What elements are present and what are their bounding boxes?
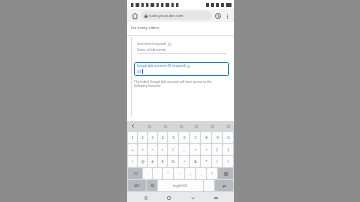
staticText: , [201,171,202,176]
button[interactable]: 8 [201,132,211,143]
button[interactable]: 3 [148,132,157,143]
staticText: ] [227,147,229,152]
staticText: ( [216,159,218,164]
button[interactable]: 0 [223,132,233,143]
staticText: 2 [141,135,144,140]
button[interactable]: 1 [128,132,137,143]
button[interactable]: 9 [212,132,222,143]
button[interactable]: Expand toolbar [129,122,137,130]
button[interactable]: Space [158,180,203,191]
button[interactable]: + [128,144,137,155]
button[interactable]: _ [179,144,189,155]
button[interactable]: Hide keyboard [188,193,197,202]
staticText: ? [211,171,213,176]
staticText: 1/2 [133,172,138,176]
button[interactable]: tudo.youtube.com [141,11,212,20]
staticText: $ [161,159,164,164]
staticText: . [209,183,210,188]
button[interactable]: Home [164,193,173,202]
button[interactable]: Home [130,11,140,21]
button[interactable]: % [168,156,178,167]
button[interactable]: = [158,144,167,155]
button[interactable]: < [190,144,200,155]
button[interactable]: 7 [190,132,200,143]
button[interactable]: / [168,144,178,155]
staticText: English(US) [173,184,188,188]
button[interactable]: Keyboard tool 3 [177,122,185,130]
button[interactable]: ) [223,156,233,167]
staticText: * [205,159,208,164]
staticText: = [161,147,164,152]
button[interactable]: Emoji [147,180,157,191]
button[interactable]: 5 [168,132,178,143]
staticText: " [167,171,169,176]
button[interactable]: More options [223,12,231,20]
staticText: & [194,159,197,164]
button[interactable]: $ [158,156,167,167]
staticText: following features: [134,84,229,88]
button[interactable]: > [201,144,211,155]
staticText: ^ [183,159,186,164]
button[interactable]: Enter [215,180,233,191]
button[interactable]: 1/2 [128,168,142,179]
button[interactable]: Recent apps [141,193,150,202]
staticText: tudo.youtube.com [149,13,184,18]
button[interactable]: 4 [158,132,167,143]
button[interactable]: Back [211,193,220,202]
button[interactable]: # [148,156,157,167]
button[interactable]: ! [128,156,137,167]
button[interactable]: ; [185,168,195,179]
staticText: Enter a link name [137,47,166,52]
staticText: Link name (required) [137,42,167,46]
button[interactable]: 6 [179,132,189,143]
button[interactable]: Keyboard tool 2 [161,122,169,130]
staticText: ! [132,159,133,164]
button[interactable]: History [213,11,223,21]
button[interactable]: ' [153,168,162,179]
button[interactable]: × [138,144,147,155]
button[interactable]: Keyboard tool 4 [192,122,200,130]
staticText: : [179,171,180,176]
button[interactable]: Link name (required) [134,40,229,56]
button[interactable]: Backspace [218,168,233,179]
staticText: _ [183,147,185,152]
button[interactable]: , [196,168,206,179]
staticText: ÷ [151,147,154,152]
button[interactable]: Keyboard tool 1 [145,122,153,130]
button[interactable]: ABC [128,180,146,191]
button[interactable]: Google Ads customer ID (required) [134,62,229,76]
staticText: ; [190,171,191,176]
staticText: - [147,171,149,176]
staticText: 4 [161,135,164,140]
button[interactable]: ^ [179,156,189,167]
staticText: 6 [183,135,186,140]
staticText: ) [227,159,229,164]
button[interactable]: Keyboard tool 6 [224,122,232,130]
button[interactable]: & [190,156,200,167]
button[interactable]: : [174,168,184,179]
button[interactable]: [ [212,144,222,155]
staticText: 0 [227,135,230,140]
button[interactable]: ( [212,156,222,167]
button[interactable]: ÷ [148,144,157,155]
staticText: [ [216,147,218,152]
staticText: for every video. [131,25,160,30]
button[interactable]: - [143,168,152,179]
button[interactable]: * [201,156,211,167]
button[interactable]: . [204,180,214,191]
button[interactable]: " [163,168,173,179]
staticText: @ [141,159,145,164]
staticText: ABC [134,184,140,188]
button[interactable]: 2 [138,132,147,143]
staticText: 7 [194,135,197,140]
staticText: / [172,147,174,152]
button[interactable]: @ [138,156,147,167]
button[interactable]: Keyboard tool 5 [208,122,216,130]
button[interactable]: ? [207,168,217,179]
staticText: Google Ads customer ID (required) [137,64,186,68]
staticText: ' [157,171,158,176]
staticText: × [141,147,144,152]
staticText: + [131,147,134,152]
staticText: 5 [172,135,175,140]
button[interactable]: ] [223,144,233,155]
